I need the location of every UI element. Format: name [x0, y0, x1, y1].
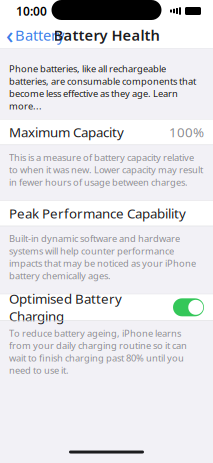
staticText: 100% [169, 123, 204, 141]
staticText: Peak Performance Capability [9, 204, 186, 222]
button[interactable]: ‹ [0, 16, 64, 54]
staticText: Optimised Battery Charging [9, 290, 122, 325]
staticText: To reduce battery ageing, iPhone learns … [9, 327, 187, 376]
staticText: 10:00 [16, 3, 47, 19]
staticText: Phone batteries, like all rechargeable b… [9, 62, 196, 112]
staticText: Maximum Capacity [9, 123, 124, 141]
staticText: Battery Health [53, 25, 159, 45]
staticText: ‹ [6, 20, 13, 50]
staticText: Battery [15, 25, 64, 45]
staticText: This is a measure of battery capacity re… [9, 151, 203, 188]
staticText: Built-in dynamic software and hardware s… [9, 232, 196, 282]
button[interactable]: Optimised Battery Charging [0, 294, 213, 320]
